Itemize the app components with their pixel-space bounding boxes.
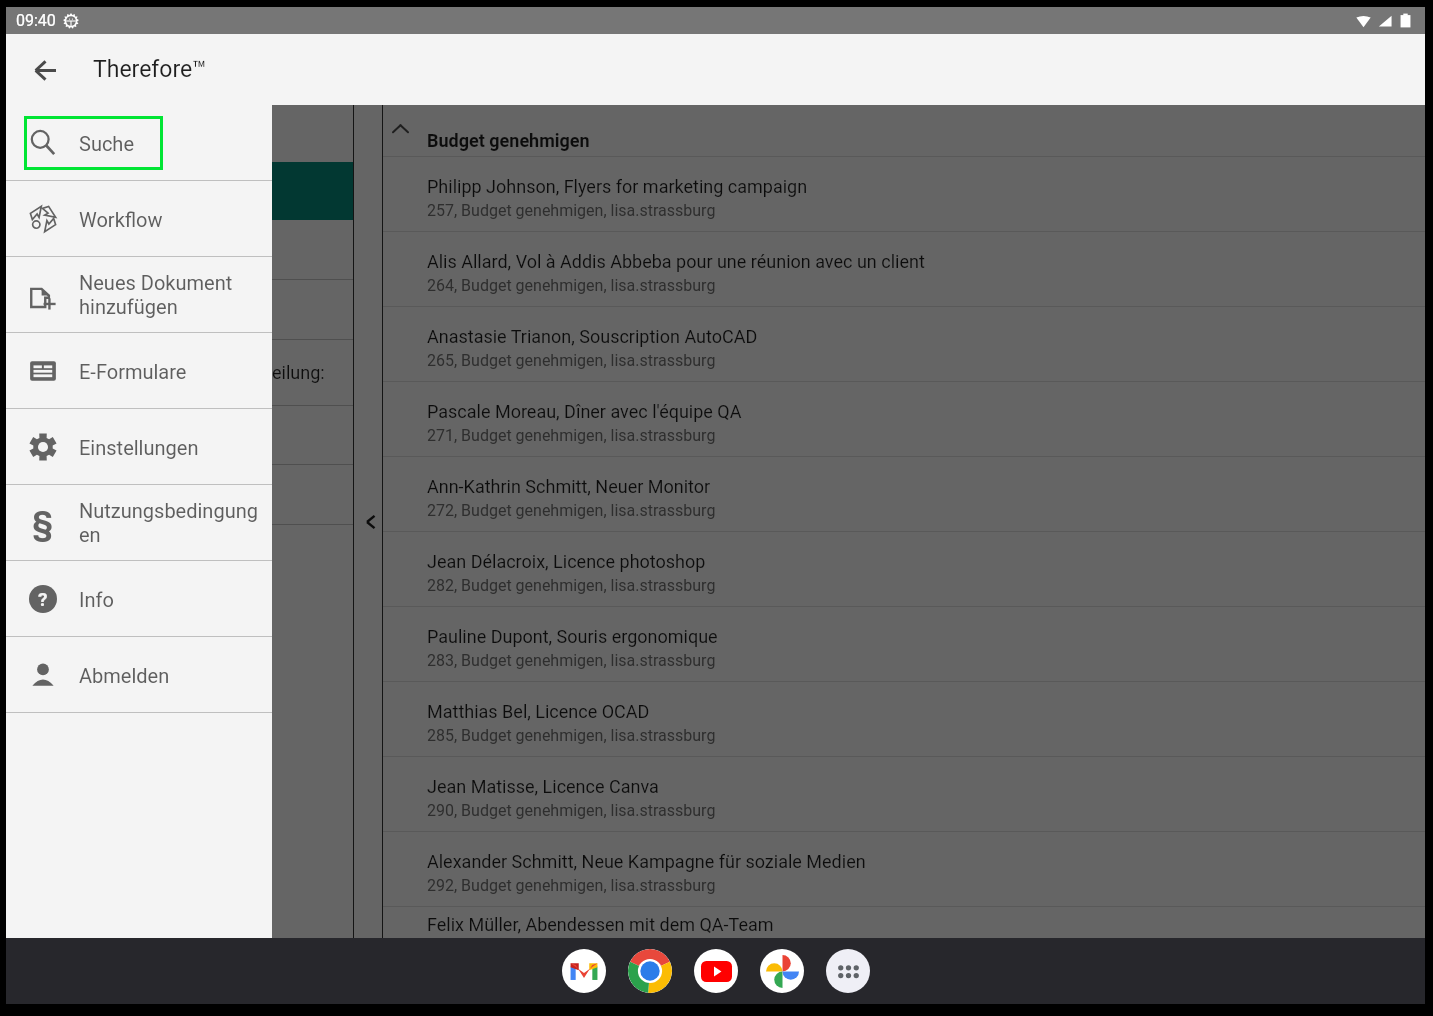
staticText: Therefore™: [93, 56, 207, 83]
button[interactable]: chrome: [628, 949, 672, 993]
button[interactable]: Jean Délacroix, Licence photoshop: [383, 532, 1425, 606]
button[interactable]: Suche: [6, 105, 272, 180]
button[interactable]: Back: [21, 46, 69, 94]
staticText: Ann-Kathrin Schmitt, Neuer Monitor: [427, 476, 711, 497]
staticText: Jean Délacroix, Licence photoshop: [427, 551, 706, 572]
staticText: 292, Budget genehmigen, lisa.strassburg: [427, 876, 716, 895]
button[interactable]: Felix Müller, Abendessen mit dem QA-Team: [383, 907, 1425, 938]
button[interactable]: Budget genehmigen: [383, 105, 1425, 156]
staticText: Workflow: [79, 208, 163, 231]
staticText: Pascale Moreau, Dîner avec l'équipe QA: [427, 401, 742, 422]
staticText: 265, Budget genehmigen, lisa.strassburg: [427, 351, 716, 370]
staticText: 285, Budget genehmigen, lisa.strassburg: [427, 726, 716, 745]
staticText: 09:40: [16, 11, 56, 30]
staticText: E-Formulare: [79, 360, 187, 383]
button[interactable]: Neues Dokument hinzufügen: [6, 257, 272, 332]
button[interactable]: Alexander Schmitt, Neue Kampagne für soz…: [383, 832, 1425, 906]
button[interactable]: Matthias Bel, Licence OCAD: [383, 682, 1425, 756]
button[interactable]: Jean Matisse, Licence Canva: [383, 757, 1425, 831]
button[interactable]: Ann-Kathrin Schmitt, Neuer Monitor: [383, 457, 1425, 531]
staticText: Alexander Schmitt, Neue Kampagne für soz…: [427, 851, 866, 872]
staticText: Info: [79, 588, 114, 611]
button[interactable]: Pascale Moreau, Dîner avec l'équipe QA: [383, 382, 1425, 456]
button[interactable]: Collapse panel: [360, 511, 382, 533]
button[interactable]: Philipp Johnson, Flyers for marketing ca…: [383, 157, 1425, 231]
button[interactable]: ?: [6, 561, 272, 636]
button[interactable]: Pauline Dupont, Souris ergonomique: [383, 607, 1425, 681]
staticText: 257, Budget genehmigen, lisa.strassburg: [427, 201, 716, 220]
button[interactable]: Anastasie Trianon, Souscription AutoCAD: [383, 307, 1425, 381]
staticText: Nutzungsbedingungen: [79, 499, 262, 547]
staticText: Philipp Johnson, Flyers for marketing ca…: [427, 176, 808, 197]
staticText: 264, Budget genehmigen, lisa.strassburg: [427, 276, 716, 295]
staticText: Alis Allard, Vol à Addis Abbeba pour une…: [427, 251, 925, 272]
button[interactable]: gmail: [562, 949, 606, 993]
staticText: Anastasie Trianon, Souscription AutoCAD: [427, 326, 758, 347]
staticText: ?: [38, 588, 48, 610]
staticText: Matthias Bel, Licence OCAD: [427, 701, 650, 722]
staticText: Felix Müller, Abendessen mit dem QA-Team: [427, 914, 774, 935]
staticText: 271, Budget genehmigen, lisa.strassburg: [427, 426, 716, 445]
staticText: 282, Budget genehmigen, lisa.strassburg: [427, 576, 716, 595]
staticText: Abmelden: [79, 664, 170, 687]
staticText: 272, Budget genehmigen, lisa.strassburg: [427, 501, 716, 520]
button[interactable]: Alis Allard, Vol à Addis Abbeba pour une…: [383, 232, 1425, 306]
button[interactable]: §: [6, 485, 272, 560]
staticText: eilung:: [272, 362, 325, 383]
staticText: §: [32, 503, 54, 543]
staticText: 283, Budget genehmigen, lisa.strassburg: [427, 651, 716, 670]
button[interactable]: Workflow: [6, 181, 272, 256]
staticText: Neues Dokument hinzufügen: [79, 271, 262, 319]
staticText: Budget genehmigen: [427, 130, 590, 151]
staticText: Einstellungen: [79, 436, 199, 459]
button[interactable]: Einstellungen: [6, 409, 272, 484]
staticText: Pauline Dupont, Souris ergonomique: [427, 626, 718, 647]
staticText: Suche: [79, 132, 134, 155]
staticText: 290, Budget genehmigen, lisa.strassburg: [427, 801, 716, 820]
button[interactable]: photos: [760, 949, 804, 993]
button[interactable]: apps: [826, 949, 870, 993]
staticText: Jean Matisse, Licence Canva: [427, 776, 659, 797]
button[interactable]: youtube: [694, 949, 738, 993]
button[interactable]: E-Formulare: [6, 333, 272, 408]
button[interactable]: Abmelden: [6, 637, 272, 712]
